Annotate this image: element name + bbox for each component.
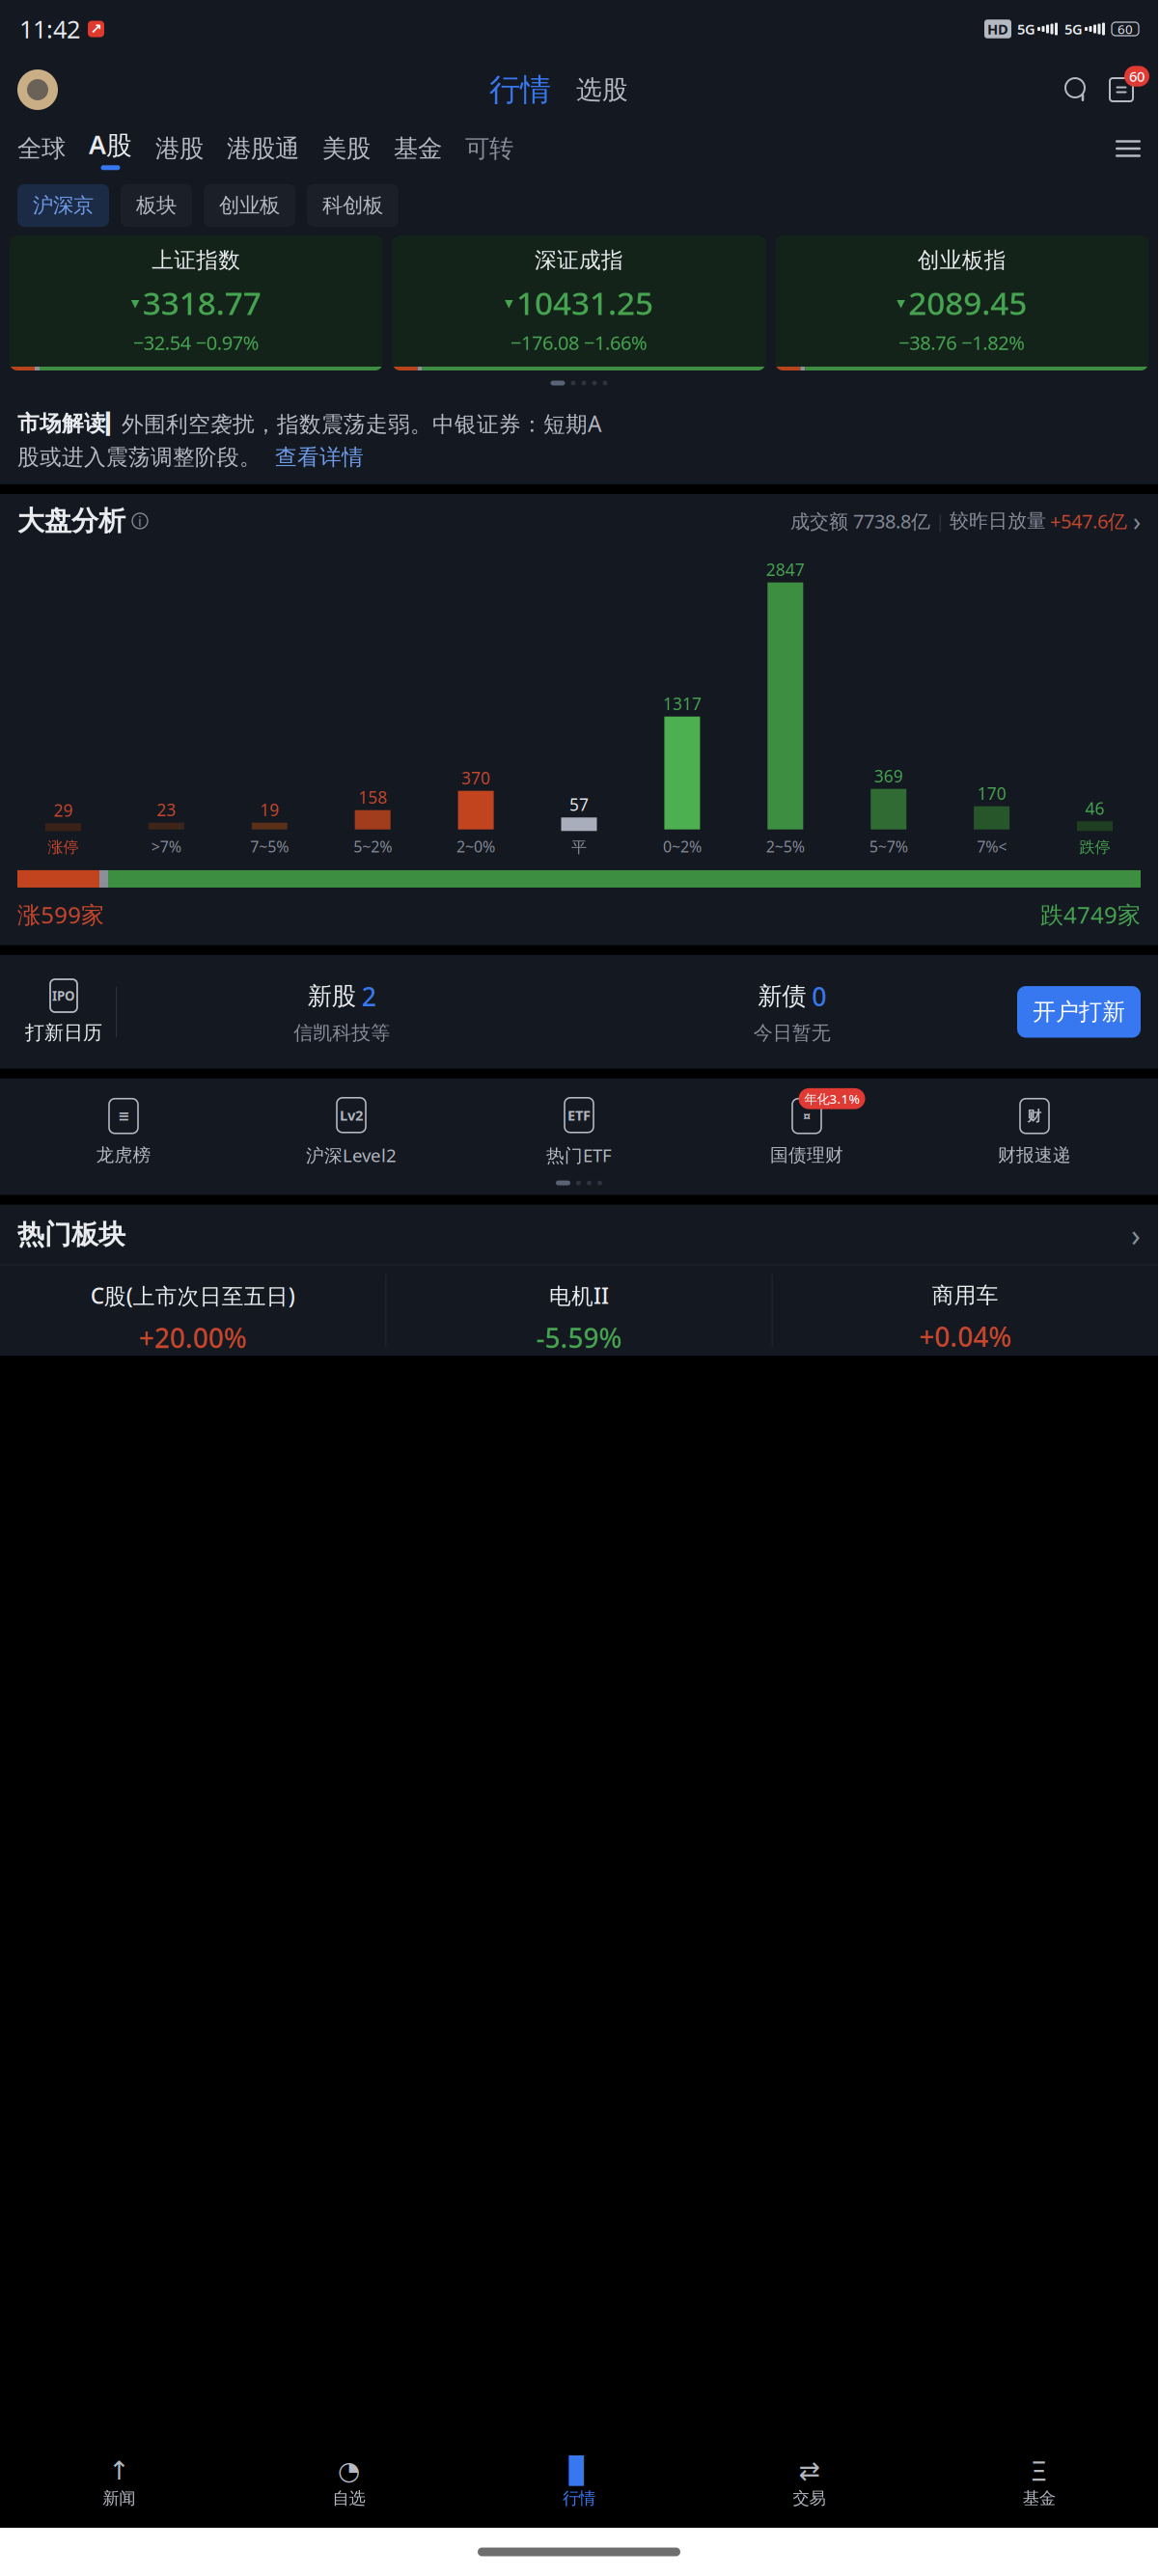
button[interactable]: Lv2 <box>237 1096 465 1167</box>
staticText: 股或进入震荡调整阶段。 <box>17 444 262 471</box>
staticText: 板块 <box>136 193 177 218</box>
button[interactable]: 选股 <box>576 74 628 106</box>
button[interactable]: 新股 <box>117 979 567 1045</box>
staticText: ◔ <box>338 2456 360 2485</box>
staticText: 行情 <box>563 2488 595 2509</box>
button[interactable]: 科创板 <box>307 184 399 227</box>
button[interactable]: 美股 <box>322 134 371 164</box>
staticText: IPO <box>52 987 75 1004</box>
staticText: 11:42 <box>19 13 80 45</box>
staticText: 选股 <box>576 74 628 106</box>
staticText: 2847 <box>766 558 805 581</box>
button[interactable]: 财 <box>921 1097 1148 1166</box>
staticText: 国债理财 <box>770 1144 843 1166</box>
staticText: 外围利空袭扰，指数震荡走弱。中银证券：短期A <box>122 409 601 438</box>
staticText: 查看详情 <box>275 444 364 471</box>
staticText: −32.54 −0.97% <box>133 330 259 355</box>
button[interactable]: Profile <box>17 69 58 110</box>
staticText: 23 <box>157 799 176 821</box>
staticText: +547.6亿 <box>1050 508 1127 534</box>
button[interactable]: 新债 <box>567 979 1017 1045</box>
staticText: 电机II <box>549 1281 609 1310</box>
staticText: 打新日历 <box>25 1021 102 1044</box>
staticText: 5~7% <box>869 836 908 857</box>
button[interactable]: 港股通 <box>227 134 299 164</box>
button[interactable]: C股(上市次日至五日) <box>0 1265 385 1356</box>
button[interactable]: 开户打新 <box>1017 986 1141 1038</box>
staticText: 年化3.1% <box>804 1090 859 1107</box>
staticText: | <box>935 509 945 533</box>
staticText: >7% <box>151 836 181 857</box>
staticText: 商用车 <box>932 1282 999 1309</box>
button[interactable]: 商用车 <box>773 1267 1158 1354</box>
staticText: 60 <box>1129 67 1145 86</box>
staticText: 新闻 <box>102 2488 135 2509</box>
button[interactable]: 创业板 <box>204 184 295 227</box>
button[interactable]: ▊ <box>464 2450 694 2516</box>
button[interactable]: Ξ <box>924 2450 1154 2516</box>
button[interactable]: 板块 <box>121 184 192 227</box>
staticText: 基金 <box>1023 2488 1056 2509</box>
staticText: 29 <box>54 799 73 821</box>
button[interactable]: ◔ <box>234 2450 464 2516</box>
staticText: 科创板 <box>322 193 383 218</box>
staticText: 5~2% <box>353 836 392 857</box>
staticText: 370 <box>461 767 490 789</box>
staticText: 2089.45 <box>908 281 1027 324</box>
staticText: 行情 <box>489 71 551 109</box>
staticText: 19 <box>260 799 279 821</box>
staticText: 龙虎榜 <box>96 1144 151 1166</box>
staticText: 热门ETF <box>546 1143 612 1167</box>
button[interactable]: Search <box>1060 74 1090 105</box>
staticText: 热门板块 <box>17 1218 125 1251</box>
staticText: 创业板指 <box>917 247 1006 274</box>
button[interactable]: ¤ <box>693 1097 921 1166</box>
button[interactable]: ETF <box>465 1096 693 1167</box>
staticText: ▎ <box>106 412 122 435</box>
staticText: 158 <box>358 786 387 808</box>
staticText: HD <box>987 20 1008 38</box>
staticText: 上证指数 <box>152 247 241 274</box>
button[interactable]: 可转 <box>465 134 513 164</box>
button[interactable]: 全球 <box>17 134 66 164</box>
staticText: 7%< <box>977 836 1007 857</box>
staticText: ≡ <box>118 1108 129 1124</box>
button[interactable]: ⇄ <box>694 2450 924 2516</box>
button[interactable]: 基金 <box>394 134 442 164</box>
staticText: 沪深京 <box>33 193 94 218</box>
staticText: 涨599家 <box>17 899 104 930</box>
button[interactable]: 行情 <box>489 71 551 109</box>
button[interactable]: 创业板指 <box>775 235 1148 370</box>
button[interactable]: 大盘分析 <box>0 494 1158 548</box>
staticText: 较昨日放量 <box>950 509 1046 533</box>
staticText: 新债 <box>758 981 806 1011</box>
staticText: −38.76 −1.82% <box>899 330 1025 355</box>
staticText: 港股 <box>155 134 204 164</box>
button[interactable]: ↑ <box>4 2450 234 2516</box>
staticText: 2~5% <box>766 836 805 857</box>
button[interactable]: IPO <box>17 979 110 1044</box>
staticText: 开户打新 <box>1033 998 1125 1026</box>
staticText: Ξ <box>1031 2454 1047 2488</box>
staticText: 大盘分析 <box>17 504 125 537</box>
button[interactable]: 沪深京 <box>17 184 109 227</box>
staticText: 2 <box>362 979 376 1013</box>
staticText: 深证成指 <box>535 247 623 274</box>
button[interactable]: 港股 <box>155 134 204 164</box>
button[interactable]: 电机II <box>386 1266 772 1356</box>
staticText: ▊ <box>569 2456 589 2485</box>
staticText: 369 <box>874 765 903 787</box>
button[interactable]: 热门板块 <box>0 1205 1158 1264</box>
button[interactable]: 市场解读 <box>0 396 1158 484</box>
staticText: 10431.25 <box>516 281 653 324</box>
staticText: › <box>1131 1214 1141 1255</box>
button[interactable]: 上证指数 <box>10 235 383 370</box>
staticText: 平 <box>571 838 587 857</box>
staticText: 美股 <box>322 134 371 164</box>
button[interactable]: ≡ <box>10 1097 237 1166</box>
button[interactable]: A股 <box>89 127 132 170</box>
button[interactable]: 深证成指 <box>392 235 766 370</box>
button[interactable]: Messages <box>1102 70 1141 109</box>
button[interactable]: More tabs <box>1106 140 1141 157</box>
staticText: 1317 <box>663 692 701 715</box>
